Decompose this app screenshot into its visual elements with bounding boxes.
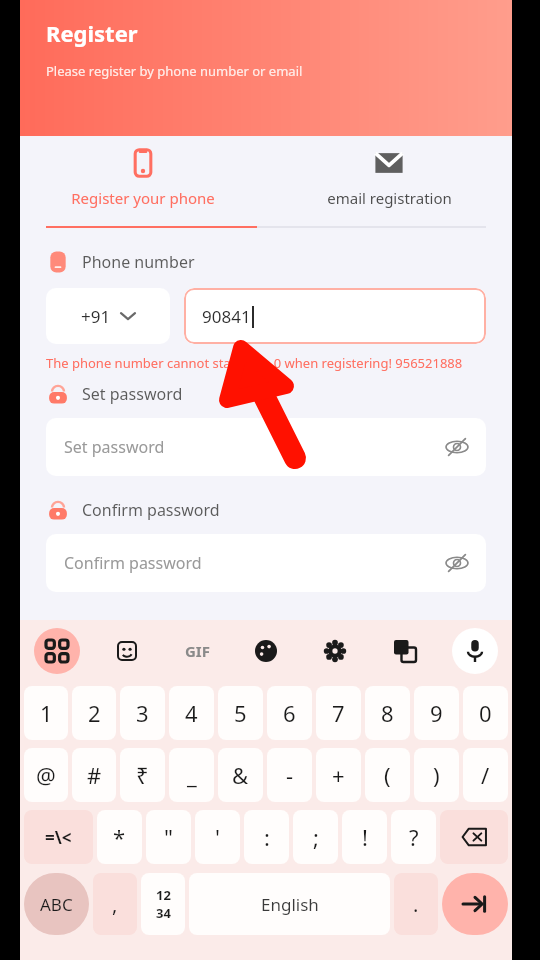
staticText: 8: [381, 698, 394, 728]
staticText: 7: [332, 698, 345, 728]
staticText: !: [362, 822, 368, 852]
staticText: ;: [313, 822, 319, 852]
staticText: 90841: [202, 305, 251, 328]
staticText: &: [232, 760, 249, 790]
staticText: _: [187, 760, 197, 790]
button[interactable]: ABC: [24, 873, 89, 935]
button[interactable]: Translate: [383, 629, 427, 673]
button[interactable]: Settings: [313, 629, 357, 673]
button[interactable]: 3: [120, 686, 165, 740]
button[interactable]: @: [24, 748, 68, 802]
button[interactable]: Voice input: [452, 628, 498, 674]
staticText: Set password: [64, 436, 446, 458]
button[interactable]: 8: [365, 686, 410, 740]
staticText: English: [261, 893, 319, 916]
button[interactable]: 5: [218, 686, 263, 740]
button[interactable]: 2: [72, 686, 116, 740]
staticText: :: [264, 822, 270, 852]
button[interactable]: &: [218, 748, 263, 802]
staticText: ?: [409, 822, 419, 852]
staticText: 34: [156, 904, 171, 922]
staticText: .: [413, 891, 419, 918]
staticText: 4: [185, 698, 198, 728]
button[interactable]: _: [169, 748, 214, 802]
other: Show password: [446, 552, 468, 574]
staticText: =\<: [45, 826, 72, 849]
button[interactable]: 90841: [184, 288, 486, 344]
button[interactable]: Apps: [34, 628, 80, 674]
button[interactable]: email registration: [266, 136, 512, 208]
staticText: ₹: [136, 760, 149, 790]
button[interactable]: :: [244, 810, 289, 864]
staticText: 2: [88, 698, 101, 728]
button[interactable]: !: [342, 810, 387, 864]
staticText: Set password: [82, 383, 183, 405]
button[interactable]: ): [414, 748, 459, 802]
button[interactable]: Confirm password: [46, 534, 486, 592]
staticText: /: [481, 760, 490, 790]
staticText: 12: [156, 886, 171, 904]
staticText: GIF: [185, 641, 210, 661]
other: Show password: [446, 436, 468, 458]
staticText: 3: [136, 698, 149, 728]
staticText: Please register by phone number or email: [46, 62, 303, 80]
button[interactable]: 4: [169, 686, 214, 740]
staticText: 0: [479, 698, 492, 728]
button[interactable]: Backspace: [440, 810, 508, 864]
staticText: Register: [46, 18, 138, 48]
staticText: ': [215, 822, 220, 852]
staticText: The phone number cannot start with 0 whe…: [46, 354, 463, 372]
staticText: ): [433, 760, 440, 790]
button[interactable]: (: [365, 748, 410, 802]
button[interactable]: ?: [391, 810, 436, 864]
staticText: @: [36, 760, 56, 790]
button[interactable]: #: [72, 748, 116, 802]
button[interactable]: 6: [267, 686, 312, 740]
staticText: email registration: [327, 188, 452, 208]
button[interactable]: +91: [46, 288, 170, 344]
button[interactable]: Set password: [46, 418, 486, 476]
button[interactable]: .: [394, 873, 438, 935]
button[interactable]: Next: [442, 873, 508, 935]
button[interactable]: ,: [93, 873, 137, 935]
button[interactable]: 7: [316, 686, 361, 740]
staticText: 9: [430, 698, 443, 728]
staticText: +91: [81, 305, 111, 328]
button[interactable]: ;: [293, 810, 338, 864]
staticText: -: [286, 760, 294, 790]
staticText: (: [384, 760, 391, 790]
button[interactable]: Numbers: [141, 873, 185, 935]
staticText: #: [87, 760, 102, 790]
button[interactable]: -: [267, 748, 312, 802]
staticText: ,: [112, 891, 118, 918]
button[interactable]: ₹: [120, 748, 165, 802]
staticText: ABC: [40, 893, 73, 916]
button[interactable]: Stickers: [105, 629, 149, 673]
staticText: 5: [234, 698, 247, 728]
button[interactable]: English: [189, 873, 390, 935]
staticText: Register your phone: [71, 188, 215, 208]
button[interactable]: 0: [463, 686, 508, 740]
button[interactable]: ': [195, 810, 240, 864]
button[interactable]: 1: [24, 686, 68, 740]
button[interactable]: ": [146, 810, 191, 864]
button[interactable]: =\<: [24, 810, 93, 864]
staticText: 1: [40, 698, 53, 728]
button[interactable]: Register your phone: [20, 136, 266, 208]
button[interactable]: Themes: [244, 629, 288, 673]
button[interactable]: *: [97, 810, 142, 864]
staticText: +: [332, 760, 345, 790]
staticText: 6: [283, 698, 296, 728]
button[interactable]: 9: [414, 686, 459, 740]
staticText: *: [113, 822, 126, 852]
button[interactable]: +: [316, 748, 361, 802]
staticText: ": [164, 822, 173, 852]
staticText: Phone number: [82, 251, 195, 273]
button[interactable]: /: [463, 748, 508, 802]
button[interactable]: GIF: [175, 629, 219, 673]
staticText: Confirm password: [82, 499, 220, 521]
staticText: Confirm password: [64, 552, 446, 574]
